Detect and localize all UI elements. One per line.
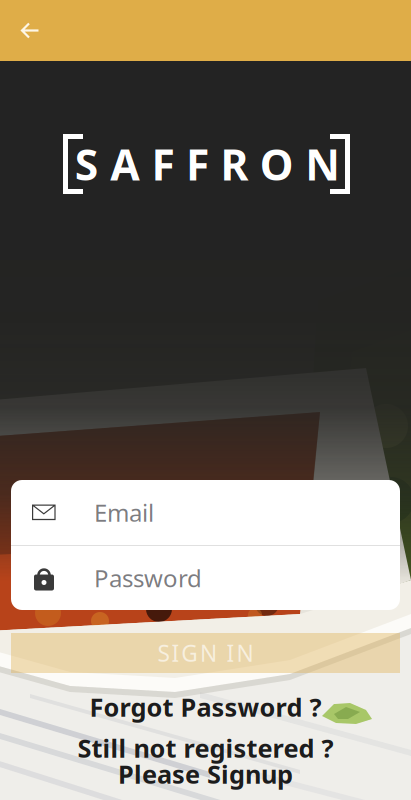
button[interactable]: Still not registered ? <box>0 735 411 787</box>
button[interactable]: Back <box>0 0 60 61</box>
staticText: S A F F R O N <box>75 136 340 192</box>
staticText: Password <box>94 562 202 594</box>
staticText: SIGN IN <box>158 638 253 668</box>
button[interactable]: Forgot Password ? <box>0 693 411 721</box>
staticText: Please Signup <box>118 757 293 791</box>
staticText: Still not registered ? <box>77 731 333 765</box>
staticText: Forgot Password ? <box>89 690 321 724</box>
button[interactable]: SIGN IN <box>11 633 400 673</box>
staticText: Email <box>94 497 154 528</box>
